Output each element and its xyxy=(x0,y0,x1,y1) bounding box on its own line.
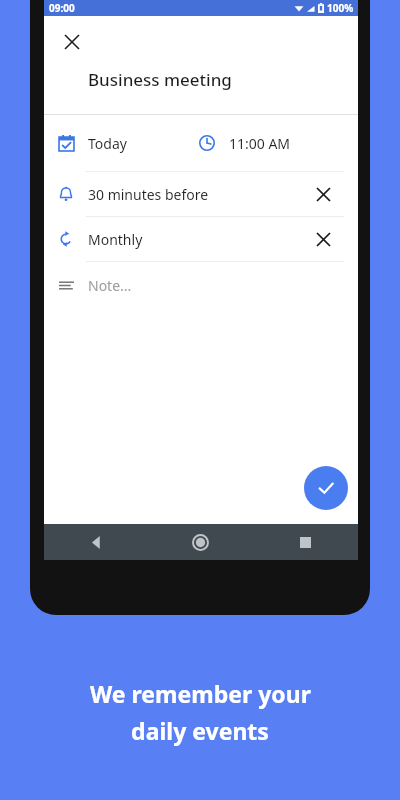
button[interactable]: Remove 30 minutes before xyxy=(310,181,336,207)
staticText: 100% xyxy=(327,1,354,15)
button[interactable]: Remove Monthly xyxy=(310,226,336,252)
button[interactable]: Close xyxy=(56,26,88,58)
staticText: daily events xyxy=(131,715,269,746)
staticText: 11:00 AM xyxy=(229,134,291,153)
button[interactable]: Home xyxy=(148,524,253,560)
staticText: 09:00 xyxy=(49,1,75,15)
button[interactable]: Today xyxy=(44,115,358,171)
button[interactable]: Save event xyxy=(304,466,348,510)
button[interactable]: Note... xyxy=(44,262,358,308)
staticText: We remember your xyxy=(90,678,311,709)
staticText: Note... xyxy=(88,276,132,295)
button[interactable]: Recents xyxy=(253,524,358,560)
staticText: Today xyxy=(88,134,127,153)
button[interactable]: Monthly xyxy=(44,217,358,261)
staticText: Business meeting xyxy=(88,68,232,91)
staticText: Monthly xyxy=(88,230,143,249)
button[interactable]: 30 minutes before xyxy=(44,172,358,216)
button[interactable]: Back xyxy=(44,524,148,560)
staticText: 30 minutes before xyxy=(88,185,209,204)
